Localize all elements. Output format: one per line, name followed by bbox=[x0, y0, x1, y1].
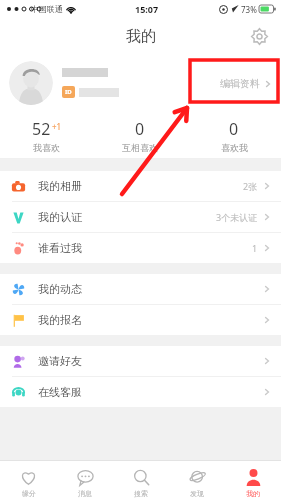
button[interactable]: 我的认证 bbox=[0, 202, 281, 232]
button[interactable]: 我的相册 bbox=[0, 171, 281, 201]
staticText: 在线客服 bbox=[38, 385, 82, 399]
button[interactable]: 52 bbox=[0, 112, 93, 159]
staticText: 0 bbox=[135, 118, 145, 140]
staticText: 0 bbox=[229, 118, 239, 140]
button[interactable]: 编辑资料 bbox=[211, 69, 281, 98]
button[interactable]: 我的 bbox=[225, 461, 281, 504]
staticText: 编辑资料 bbox=[220, 77, 260, 90]
staticText: 我的 bbox=[126, 27, 156, 46]
button[interactable]: Settings bbox=[245, 22, 273, 50]
button[interactable]: 0 bbox=[187, 112, 281, 159]
staticText: 15:07 bbox=[135, 3, 159, 15]
staticText: 搜索 bbox=[134, 489, 148, 498]
staticText: 缘分 bbox=[22, 489, 36, 498]
button[interactable]: ID bbox=[0, 54, 281, 112]
staticText: 我的 bbox=[246, 489, 260, 498]
button[interactable]: 搜索 bbox=[113, 461, 169, 504]
button[interactable]: 0 bbox=[93, 112, 187, 159]
staticText: 1 bbox=[252, 242, 258, 254]
staticText: 消息 bbox=[78, 489, 92, 498]
button[interactable]: 谁看过我 bbox=[0, 233, 281, 263]
button[interactable]: 缘分 bbox=[0, 461, 57, 504]
staticText: 互相喜欢 bbox=[122, 142, 158, 153]
staticText: 我的报名 bbox=[38, 313, 82, 327]
staticText: 3个未认证 bbox=[216, 211, 258, 223]
staticText: 邀请好友 bbox=[38, 354, 82, 368]
staticText: 谁看过我 bbox=[38, 241, 82, 255]
staticText: 我的相册 bbox=[38, 179, 82, 193]
staticText: +1 bbox=[52, 121, 62, 132]
button[interactable]: 消息 bbox=[57, 461, 113, 504]
button[interactable]: 我的动态 bbox=[0, 274, 281, 304]
staticText: 我喜欢 bbox=[33, 142, 60, 153]
staticText: 喜欢我 bbox=[221, 142, 248, 153]
staticText: 发现 bbox=[190, 489, 204, 498]
staticText: 我的认证 bbox=[38, 210, 82, 224]
staticText: 2张 bbox=[243, 180, 258, 192]
staticText: ID bbox=[65, 88, 72, 96]
button[interactable]: 我的报名 bbox=[0, 305, 281, 335]
staticText: 52 bbox=[32, 118, 51, 140]
button[interactable]: 在线客服 bbox=[0, 377, 281, 407]
button[interactable]: 邀请好友 bbox=[0, 346, 281, 376]
staticText: 我的动态 bbox=[38, 282, 82, 296]
staticText: 73% bbox=[241, 4, 257, 15]
button[interactable]: 发现 bbox=[169, 461, 225, 504]
staticText: 中国联通 bbox=[31, 4, 63, 14]
